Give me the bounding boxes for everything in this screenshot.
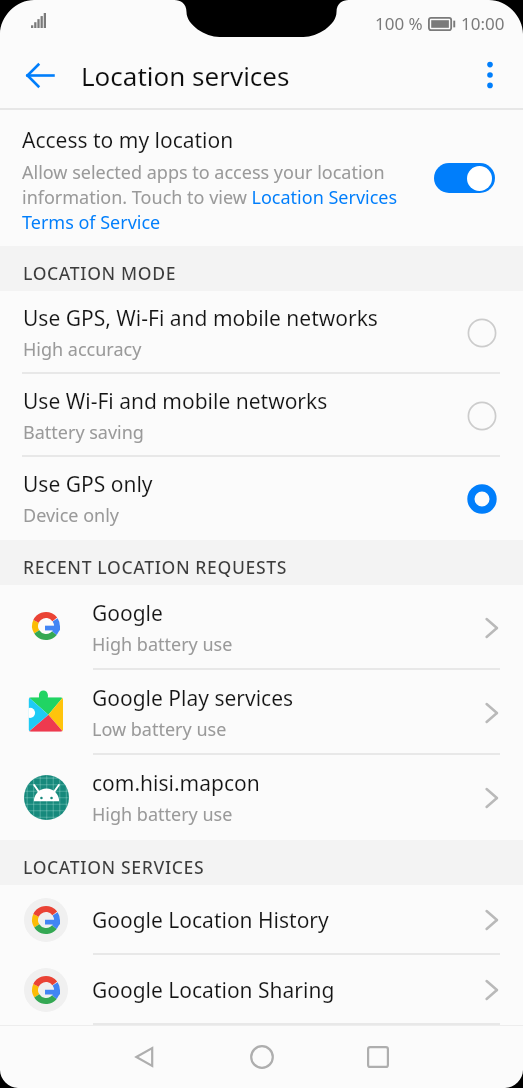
staticText: LOCATION MODE [23, 261, 177, 285]
staticText: Use GPS only [23, 470, 153, 499]
button[interactable]: Back [121, 1033, 169, 1081]
staticText: High accuracy [23, 337, 142, 362]
staticText: RECENT LOCATION REQUESTS [23, 555, 288, 579]
staticText: High battery use [92, 632, 233, 657]
staticText: Access to my location [22, 126, 234, 155]
button[interactable]: Google Location History [0, 885, 523, 955]
staticText: Use Wi-Fi and mobile networks [23, 387, 328, 416]
staticText: LOCATION SERVICES [23, 855, 205, 879]
staticText: com.hisi.mapcon [92, 769, 260, 798]
button[interactable]: Recents [354, 1033, 402, 1081]
button[interactable]: com.hisi.mapcon [0, 755, 523, 840]
button[interactable]: Use GPS, Wi-Fi and mobile networks [0, 291, 523, 374]
button[interactable]: Google Play services [0, 670, 523, 755]
button[interactable]: Home [238, 1033, 286, 1081]
staticText: Use GPS, Wi-Fi and mobile networks [23, 304, 378, 333]
button[interactable]: More options [462, 47, 518, 103]
staticText: Google [92, 599, 163, 628]
staticText: 10:00 [461, 12, 505, 35]
button[interactable]: Use GPS only [0, 457, 523, 540]
button[interactable]: Google [0, 585, 523, 670]
staticText: Battery saving [23, 420, 144, 445]
staticText: Low battery use [92, 717, 227, 742]
button[interactable]: Access to my location [0, 110, 523, 246]
staticText: High battery use [92, 802, 233, 827]
staticText: Location services [81, 58, 290, 93]
staticText: Google Location History [92, 906, 329, 935]
staticText: Device only [23, 503, 120, 528]
staticText: 100 % [375, 12, 423, 35]
button[interactable]: Back [12, 47, 68, 103]
button[interactable]: Use Wi-Fi and mobile networks [0, 374, 523, 457]
staticText: Google Location Sharing [92, 976, 335, 1005]
staticText: Allow selected apps to access your locat… [22, 160, 404, 235]
button[interactable]: Google Location Sharing [0, 955, 523, 1025]
staticText: Google Play services [92, 684, 294, 713]
button[interactable]: Access to my location toggle [434, 163, 495, 193]
